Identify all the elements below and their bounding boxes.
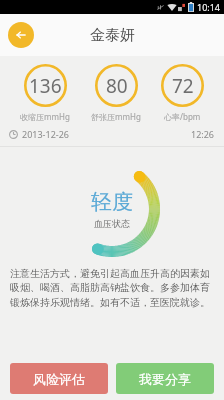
staticText: 血压状态 — [94, 218, 130, 229]
staticText: 80 — [106, 73, 128, 99]
staticText: 72 — [172, 73, 194, 99]
staticText: 2013-12-26 — [22, 128, 69, 140]
staticText: 12:26 — [191, 128, 215, 140]
staticText: 心率/bpm — [164, 111, 201, 122]
staticText: 收缩压mmHg — [20, 111, 70, 122]
staticText: 136 — [29, 73, 62, 99]
staticText: 轻度 — [91, 189, 133, 215]
staticText: 我要分享 — [139, 371, 191, 387]
button[interactable]: 风险评估 — [10, 363, 108, 394]
staticText: 舒张压mmHg — [91, 111, 141, 122]
button[interactable]: Back — [8, 22, 34, 48]
button[interactable]: 我要分享 — [116, 363, 214, 394]
staticText: 风险评估 — [33, 371, 85, 387]
staticText: 注意生活方式，避免引起高血压升高的因素如吸烟、喝酒、高脂肪高钠盐饮食。多参加体育… — [10, 267, 214, 309]
staticText: 金泰妍 — [90, 26, 135, 45]
staticText: 10:14 — [197, 1, 221, 13]
